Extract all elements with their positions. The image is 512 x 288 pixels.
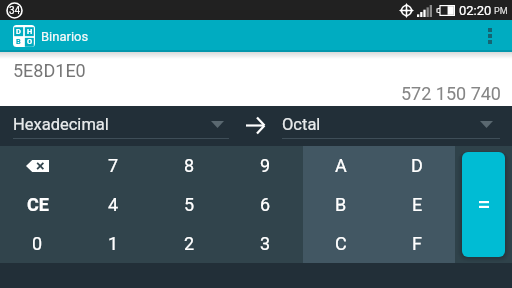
staticText: 6 <box>260 194 271 215</box>
staticText: E <box>412 194 423 215</box>
button[interactable]: 9 <box>227 146 303 185</box>
staticText: 5E8D1E0 <box>13 60 86 81</box>
staticText: 02:20 <box>459 3 492 18</box>
staticText: CE <box>27 194 49 215</box>
button[interactable]: CE <box>0 185 75 224</box>
other: Backspace <box>26 160 49 172</box>
button[interactable]: D <box>379 146 455 185</box>
staticText: Octal <box>282 115 321 134</box>
button[interactable]: A <box>303 146 379 185</box>
button[interactable]: 7 <box>75 146 151 185</box>
button[interactable]: 6 <box>227 185 303 224</box>
staticText: 9 <box>260 155 271 176</box>
staticText: D <box>411 155 423 176</box>
button[interactable]: 5 <box>151 185 227 224</box>
button[interactable]: 0 <box>0 224 75 263</box>
staticText: B <box>335 194 347 215</box>
staticText: Binarios <box>41 29 89 44</box>
button[interactable]: 8 <box>151 146 227 185</box>
button[interactable]: Octal <box>282 106 500 146</box>
button[interactable]: C <box>303 224 379 263</box>
staticText: 3 <box>260 233 271 254</box>
staticText: Hexadecimal <box>13 115 109 134</box>
staticText: 5 <box>184 194 195 215</box>
button[interactable]: E <box>379 185 455 224</box>
button[interactable]: 4 <box>75 185 151 224</box>
staticText: 8 <box>184 155 195 176</box>
staticText: 7 <box>108 155 119 176</box>
staticText: H <box>27 27 33 36</box>
staticText: A <box>335 155 347 176</box>
staticText: 34 <box>9 5 21 17</box>
button[interactable]: 1 <box>75 224 151 263</box>
staticText: D <box>16 27 21 36</box>
staticText: F <box>412 233 422 254</box>
staticText: 572 150 740 <box>401 83 501 104</box>
button[interactable]: Hexadecimal <box>13 106 229 146</box>
staticText: PM <box>494 6 508 17</box>
staticText: C <box>335 233 347 254</box>
staticText: B <box>16 37 21 46</box>
button[interactable]: 3 <box>227 224 303 263</box>
staticText: 4 <box>108 194 119 215</box>
staticText: 2 <box>184 233 195 254</box>
button[interactable]: B <box>303 185 379 224</box>
staticText: O <box>27 37 33 46</box>
button[interactable]: Backspace <box>0 146 75 185</box>
button[interactable]: F <box>379 224 455 263</box>
button[interactable]: More options <box>468 20 512 52</box>
staticText: 1 <box>108 233 119 254</box>
button[interactable]: 2 <box>151 224 227 263</box>
staticText: 0 <box>32 233 43 254</box>
button[interactable]: Equals <box>462 152 505 257</box>
